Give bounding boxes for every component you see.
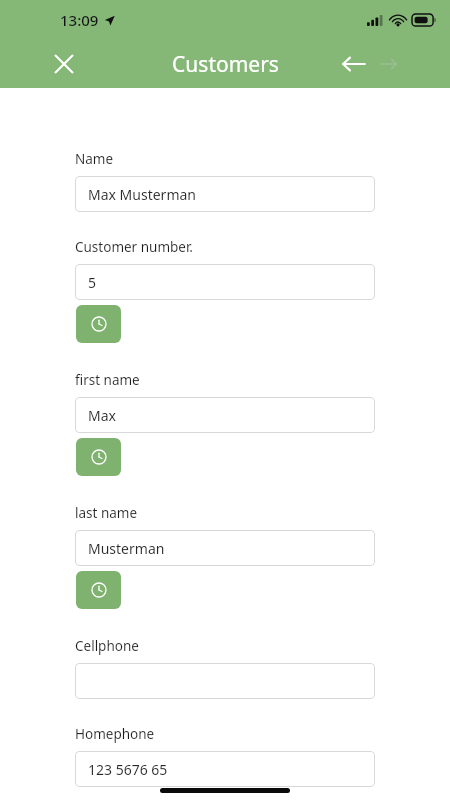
- staticText: 13:09: [60, 10, 99, 30]
- button[interactable]: 5: [75, 264, 375, 300]
- button[interactable]: History: [76, 438, 121, 476]
- staticText: Customers: [172, 50, 279, 79]
- button[interactable]: Musterman: [75, 530, 375, 566]
- button[interactable]: 123 5676 65: [75, 751, 375, 787]
- staticText: Homephone: [75, 725, 155, 743]
- button[interactable]: Max: [75, 397, 375, 433]
- staticText: first name: [75, 371, 140, 389]
- staticText: Max: [88, 406, 116, 425]
- button[interactable]: [75, 663, 375, 699]
- staticText: 5: [88, 273, 97, 292]
- staticText: Customer number.: [75, 238, 193, 256]
- staticText: 123 5676 65: [88, 760, 168, 779]
- button[interactable]: Max Musterman: [75, 176, 375, 212]
- staticText: Cellphone: [75, 637, 139, 655]
- button[interactable]: Close: [46, 46, 82, 82]
- staticText: last name: [75, 504, 138, 522]
- button[interactable]: History: [76, 305, 121, 343]
- staticText: Max Musterman: [88, 185, 196, 204]
- staticText: Musterman: [88, 539, 165, 558]
- button[interactable]: History: [76, 571, 121, 609]
- staticText: Name: [75, 150, 114, 168]
- button[interactable]: Back: [338, 48, 370, 80]
- button[interactable]: Forward: [374, 50, 402, 78]
